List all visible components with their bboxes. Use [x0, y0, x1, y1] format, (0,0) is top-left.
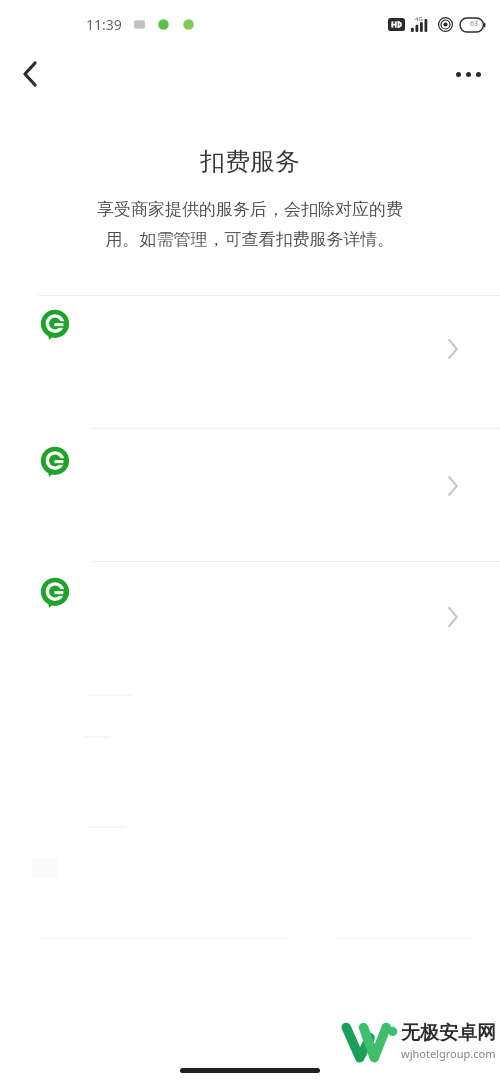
button[interactable]: Back	[8, 52, 52, 96]
staticText: 扣费服务	[200, 146, 300, 177]
staticText: wjhotelgroup.com	[401, 1046, 496, 1061]
staticText: 63	[470, 19, 479, 29]
staticText: 无极安卓网	[401, 1021, 496, 1045]
staticText: 4G	[415, 15, 423, 23]
staticText: 11:39	[86, 15, 122, 34]
button[interactable]	[0, 429, 500, 561]
button[interactable]	[0, 296, 500, 428]
staticText: 享受商家提供的服务后，会扣除对应的费 用。如需管理，可查看扣费服务详情。	[97, 199, 403, 250]
button[interactable]: More options	[446, 52, 490, 96]
button[interactable]	[0, 562, 500, 672]
